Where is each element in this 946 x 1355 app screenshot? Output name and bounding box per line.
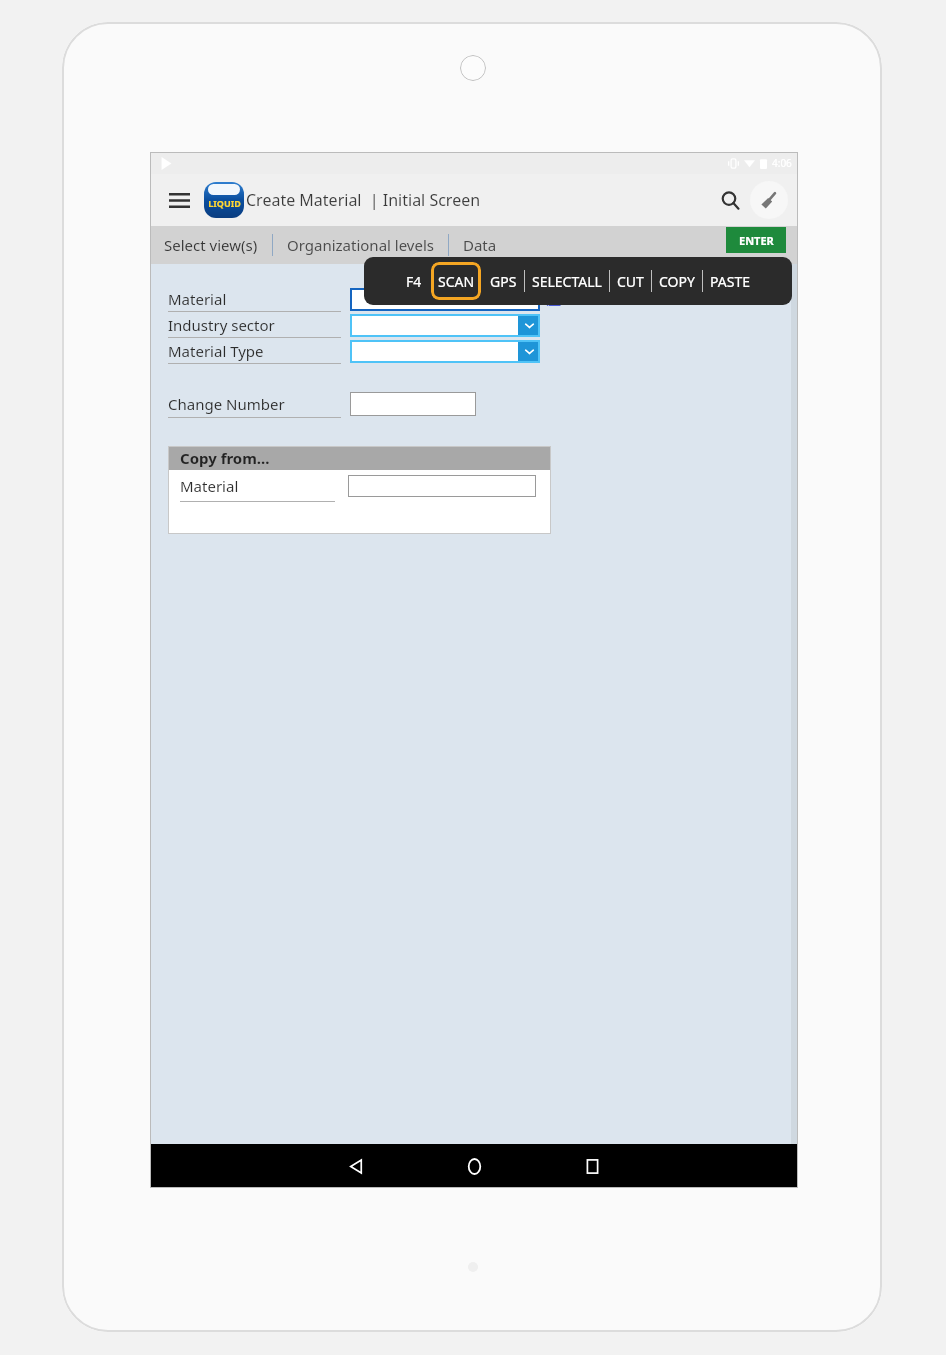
staticText: SELECTALL: [532, 272, 602, 291]
button[interactable]: [350, 288, 540, 311]
button[interactable]: ENTER: [726, 227, 786, 253]
staticText: PASTE: [710, 272, 750, 291]
button[interactable]: PASTE: [703, 266, 757, 297]
staticText: Change Number: [168, 394, 285, 414]
staticText: 4:06: [772, 156, 792, 170]
button[interactable]: Menu: [162, 183, 196, 217]
button[interactable]: Select view(s): [164, 235, 258, 255]
staticText: Material: [168, 289, 227, 309]
staticText: F4: [406, 272, 422, 291]
staticText: Create Material | Initial Screen: [246, 189, 481, 211]
staticText: Industry sector: [168, 315, 275, 335]
staticText: ENTER: [739, 233, 774, 248]
staticText: COPY: [659, 272, 695, 291]
staticText: Material Type: [168, 341, 264, 361]
button[interactable]: Recents: [563, 1144, 621, 1188]
button[interactable]: CUT: [610, 266, 651, 297]
staticText: Material: [180, 476, 239, 496]
button[interactable]: Organizational levels: [287, 235, 434, 255]
staticText: LIQUID: [208, 197, 241, 209]
button[interactable]: GPS: [483, 266, 524, 297]
button[interactable]: Back: [327, 1144, 385, 1188]
button[interactable]: [348, 475, 536, 497]
button[interactable]: Search: [710, 180, 750, 220]
button[interactable]: Home: [445, 1144, 503, 1188]
staticText: Copy from...: [180, 448, 270, 468]
button[interactable]: [350, 392, 476, 416]
staticText: SCAN: [438, 272, 475, 291]
button[interactable]: [350, 340, 540, 363]
button[interactable]: F4: [399, 266, 429, 297]
button[interactable]: SCAN: [431, 262, 481, 300]
button[interactable]: Data: [463, 235, 497, 255]
button[interactable]: [350, 314, 540, 337]
staticText: GPS: [490, 272, 517, 291]
button[interactable]: Value help: [544, 290, 562, 308]
button[interactable]: Theme brush: [750, 181, 788, 219]
button[interactable]: COPY: [652, 266, 702, 297]
staticText: CUT: [617, 272, 644, 291]
button[interactable]: SELECTALL: [525, 266, 609, 297]
